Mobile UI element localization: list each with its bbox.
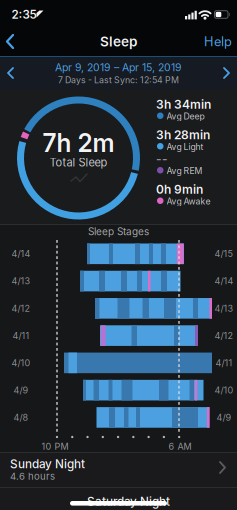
staticText: Sunday Night	[10, 457, 85, 471]
staticText: 4/12	[11, 303, 30, 314]
button[interactable]	[220, 66, 232, 80]
staticText: Sleep Stages	[88, 225, 149, 238]
staticText: 4/14	[214, 276, 233, 287]
staticText: Avg Deep	[166, 111, 204, 121]
staticText: 2:35	[11, 7, 36, 21]
staticText: 6 AM	[168, 441, 191, 452]
button[interactable]: Saturday Night	[0, 488, 237, 510]
staticText: Avg Awake	[166, 196, 210, 206]
staticText: 4/9	[13, 385, 28, 396]
staticText: 7h 2m	[42, 128, 114, 158]
staticText: 3h 34min	[156, 97, 211, 111]
staticText: 4/11	[12, 330, 29, 341]
staticText: 4/15	[214, 248, 233, 259]
staticText: 4/12	[214, 330, 233, 341]
staticText: 4.6 hours	[10, 470, 55, 482]
button[interactable]: Help	[204, 34, 232, 49]
staticText: Sleep	[100, 33, 137, 50]
staticText: 4/14	[11, 248, 30, 259]
staticText: Help	[204, 34, 232, 49]
staticText: 4/8	[13, 412, 28, 423]
staticText: Apr 9, 2019 – Apr 15, 2019	[55, 61, 182, 74]
button[interactable]: Sunday Night	[0, 452, 237, 487]
button[interactable]	[70, 173, 88, 183]
staticText: 10 PM	[41, 441, 68, 452]
staticText: 4/13	[214, 303, 233, 314]
staticText: 0h 9min	[156, 182, 203, 196]
staticText: 4/10	[214, 385, 233, 396]
button[interactable]	[4, 33, 18, 50]
staticText: 7 Days - Last Sync: 12:54 PM	[58, 75, 179, 85]
staticText: Avg Light	[166, 141, 203, 152]
staticText: Saturday Night	[87, 494, 170, 509]
staticText: 4/9	[216, 412, 231, 423]
staticText: 3h 28min	[156, 127, 210, 142]
staticText: 4/13	[11, 276, 30, 287]
button[interactable]	[5, 66, 17, 80]
staticText: Total Sleep	[49, 156, 107, 169]
staticText: 4/10	[11, 357, 30, 368]
staticText: Avg REM	[166, 165, 202, 176]
staticText: 4/11	[215, 357, 232, 368]
staticText: --	[156, 151, 168, 166]
